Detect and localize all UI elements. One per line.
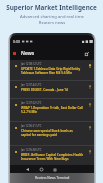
staticText: UPDATE 1-Tableau Data Grip Rigid Entity … <box>21 67 81 75</box>
staticText: Jan 12 08:12 UTC <box>21 62 42 66</box>
staticText: News <box>21 50 35 57</box>
button[interactable]: Pin story <box>87 125 93 131</box>
staticText: Advanced charting and real time Reuters … <box>20 14 84 26</box>
staticText: PRESS DIGEST- Canada - June 14 <box>21 88 68 92</box>
button[interactable]: Reuters News Terminal <box>10 173 94 183</box>
button[interactable]: Jan 12 07:02 UTC <box>10 99 94 121</box>
staticText: BRIEF- Brilliance Capital Completes Heal… <box>21 153 84 161</box>
staticText: Chinese own special Stock levels as capi… <box>21 129 73 137</box>
staticText: Jan 12 06:31 UTC <box>21 124 42 128</box>
button[interactable]: Jan 12 06:31 UTC <box>10 122 94 145</box>
button[interactable]: Pin story <box>87 84 93 90</box>
button[interactable]: Jan 12 07:44 UTC <box>10 81 94 98</box>
button[interactable]: Jan 12 05:58 UTC <box>10 146 94 165</box>
staticText: Reuters News Terminal <box>35 176 70 180</box>
button[interactable]: Pin story <box>87 63 93 69</box>
button[interactable]: Filter <box>83 50 91 58</box>
staticText: 0:00 <box>13 39 20 44</box>
staticText: Jan 12 07:02 UTC <box>21 101 42 105</box>
button[interactable]: Pin story <box>87 102 93 108</box>
button[interactable]: Back <box>24 166 31 173</box>
staticText: Jan 12 05:58 UTC <box>21 148 42 152</box>
button[interactable]: Recents <box>51 166 58 173</box>
staticText: Jan 12 07:44 UTC <box>21 83 42 87</box>
button[interactable]: Jan 12 08:12 UTC <box>10 60 94 80</box>
button[interactable]: Home <box>38 166 45 173</box>
staticText: WRAP 1-Reposition Tr talk, East Dollar C… <box>21 106 83 114</box>
button[interactable]: Pin story <box>87 149 93 155</box>
staticText: Superior Market Intelligence <box>6 3 97 12</box>
